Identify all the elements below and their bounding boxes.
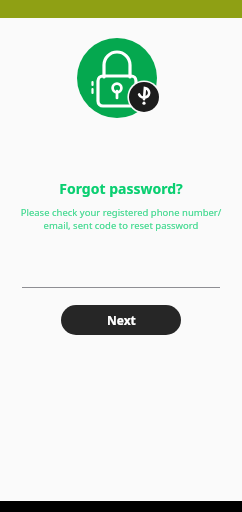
- staticText: Next: [107, 312, 136, 328]
- other: Forgot password lock: [77, 38, 165, 118]
- button[interactable]: Next: [61, 305, 181, 335]
- staticText: Forgot password?: [59, 179, 183, 198]
- staticText: Please check your registered phone numbe…: [10, 206, 232, 232]
